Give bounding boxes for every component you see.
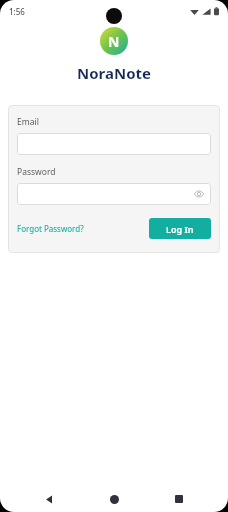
button[interactable]: Forgot Password? [17, 220, 84, 237]
staticText: Forgot Password? [17, 223, 84, 234]
staticText: Email [17, 116, 39, 128]
staticText: NoraNote [0, 63, 228, 83]
button[interactable]: Show password [17, 183, 211, 205]
button[interactable]: Home [98, 486, 130, 512]
button[interactable] [17, 133, 211, 155]
button[interactable]: Log In [149, 218, 211, 239]
button[interactable]: Recent apps [163, 486, 195, 512]
staticText: 1:56 [9, 6, 25, 17]
staticText: Password [17, 166, 56, 178]
staticText: Log In [166, 223, 194, 235]
staticText: N [108, 32, 120, 51]
button[interactable]: Show password [193, 188, 205, 200]
button[interactable]: Back [33, 486, 65, 512]
